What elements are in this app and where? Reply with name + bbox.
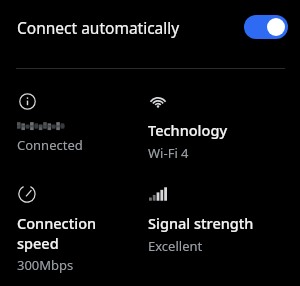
button[interactable]: Connect automatically toggle, on bbox=[244, 15, 288, 39]
button[interactable]: Connection speed bbox=[17, 184, 142, 274]
staticText: 300Mbps bbox=[17, 256, 74, 274]
staticText: Signal strength bbox=[148, 213, 273, 233]
button[interactable]: Connected bbox=[17, 91, 142, 154]
button[interactable]: Technology bbox=[148, 91, 273, 162]
staticText: Excellent bbox=[148, 237, 203, 255]
staticText: Technology bbox=[148, 120, 273, 140]
staticText: Wi-Fi 4 bbox=[148, 144, 189, 162]
staticText: Connect automatically bbox=[17, 17, 180, 38]
button[interactable]: Connect automatically bbox=[0, 0, 300, 54]
staticText: Connected bbox=[17, 136, 83, 154]
button[interactable]: Signal strength bbox=[148, 184, 273, 255]
staticText: Connection speed bbox=[17, 213, 109, 253]
